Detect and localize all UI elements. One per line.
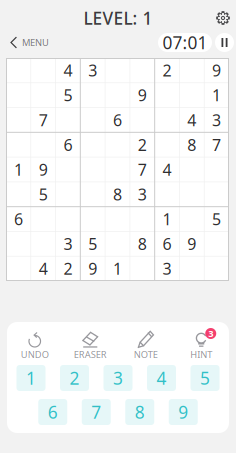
- staticText: 3: [88, 60, 97, 81]
- staticText: 8: [138, 233, 147, 254]
- staticText: 5: [63, 84, 72, 106]
- staticText: 9: [39, 159, 48, 180]
- staticText: 4: [63, 60, 72, 81]
- button[interactable]: 6: [38, 399, 67, 425]
- staticText: 3: [208, 327, 213, 340]
- staticText: MENU: [22, 36, 49, 49]
- staticText: 2: [63, 258, 72, 279]
- staticText: 6: [163, 233, 172, 254]
- staticText: 9: [178, 400, 188, 423]
- staticText: 5: [200, 366, 210, 389]
- staticText: 8: [113, 184, 122, 205]
- staticText: 4: [187, 109, 196, 130]
- staticText: 2: [69, 366, 79, 389]
- button[interactable]: 7: [82, 399, 111, 425]
- staticText: 4: [39, 258, 48, 279]
- staticText: 1: [163, 208, 172, 230]
- staticText: 1: [14, 159, 23, 180]
- staticText: 8: [135, 400, 145, 423]
- staticText: 6: [63, 134, 72, 155]
- button[interactable]: 3: [103, 365, 132, 391]
- staticText: 8: [187, 134, 196, 155]
- button[interactable]: 2: [60, 365, 89, 391]
- staticText: 2: [163, 60, 172, 81]
- staticText: NOTE: [134, 348, 158, 361]
- staticText: 4: [156, 366, 166, 389]
- button[interactable]: 8: [125, 399, 154, 425]
- staticText: 3: [138, 184, 147, 205]
- staticText: LEVEL: 1: [83, 6, 152, 29]
- staticText: 3: [212, 109, 221, 130]
- button[interactable]: 1: [16, 365, 45, 391]
- staticText: 6: [113, 109, 122, 130]
- staticText: 7: [91, 400, 101, 423]
- button[interactable]: 9: [169, 399, 198, 425]
- staticText: 2: [138, 134, 147, 155]
- button[interactable]: Settings: [210, 5, 236, 31]
- staticText: 9: [88, 258, 97, 279]
- staticText: 7: [212, 134, 221, 155]
- staticText: 5: [88, 233, 97, 254]
- button[interactable]: 3: [173, 330, 229, 360]
- staticText: 3: [163, 258, 172, 279]
- staticText: 1: [113, 258, 122, 279]
- button[interactable]: 4: [147, 365, 176, 391]
- button[interactable]: UNDO: [7, 330, 62, 360]
- staticText: 1: [26, 366, 36, 389]
- staticText: 6: [14, 208, 23, 230]
- staticText: 3: [63, 233, 72, 254]
- button[interactable]: MENU: [0, 30, 57, 54]
- staticText: 1: [212, 84, 221, 106]
- staticText: 3: [113, 366, 123, 389]
- staticText: 6: [48, 400, 58, 423]
- staticText: 4: [163, 159, 172, 180]
- staticText: 9: [138, 84, 147, 106]
- button[interactable]: NOTE: [118, 330, 173, 360]
- staticText: 7: [39, 109, 48, 130]
- button[interactable]: ERASER: [62, 330, 118, 360]
- button[interactable]: Pause: [215, 33, 234, 52]
- button[interactable]: 5: [190, 365, 219, 391]
- staticText: 07:01: [162, 31, 207, 54]
- staticText: 5: [39, 184, 48, 205]
